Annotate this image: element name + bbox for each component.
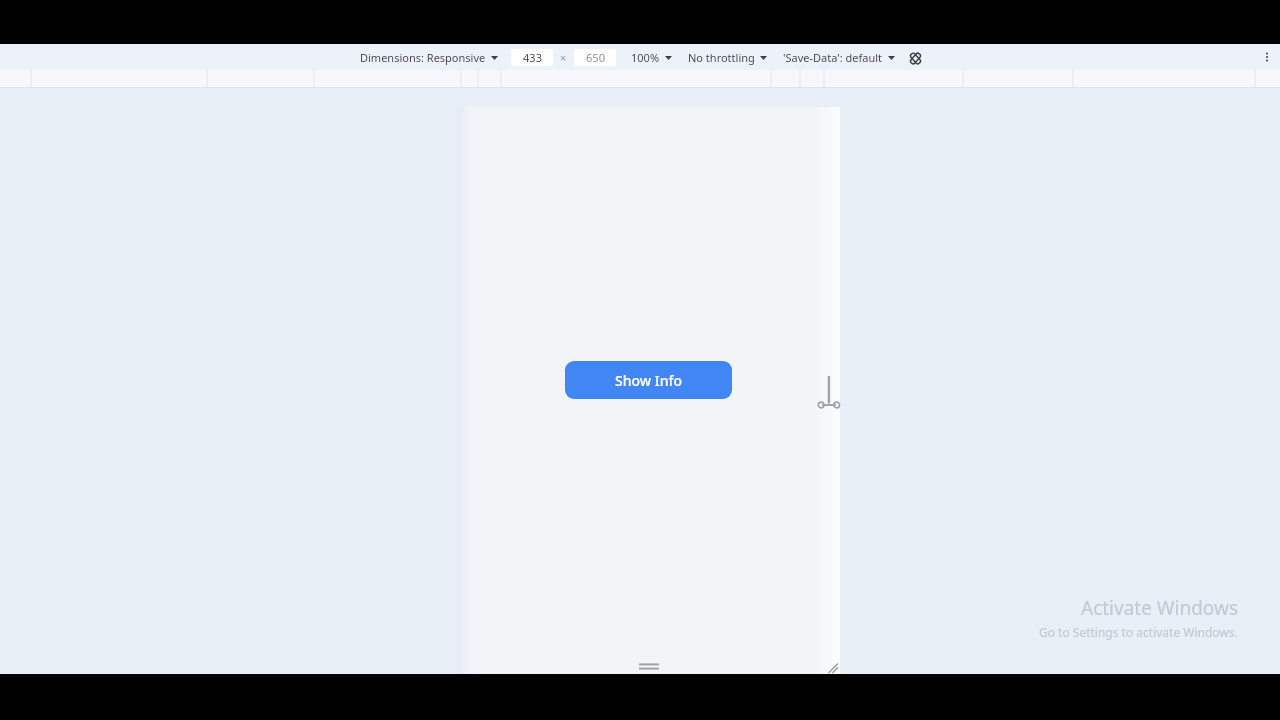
button[interactable]: Show Info <box>565 361 732 399</box>
button[interactable]: Resize <box>824 659 838 673</box>
staticText: Activate Windows <box>1081 595 1238 621</box>
button[interactable]: No throttling <box>685 48 770 67</box>
staticText: 100% <box>631 50 660 65</box>
button[interactable]: More options <box>1257 47 1277 67</box>
staticText: × <box>560 50 567 65</box>
staticText: Show Info <box>615 371 682 390</box>
button[interactable]: Rotate <box>906 49 924 67</box>
button[interactable]: 650 <box>574 49 616 66</box>
staticText: 'Save-Data': default <box>783 50 883 65</box>
button[interactable]: Dimensions: Responsive <box>357 48 501 67</box>
staticText: Dimensions: Responsive <box>360 50 486 65</box>
button[interactable]: Resize width <box>818 372 844 422</box>
staticText: Go to Settings to activate Windows. <box>1039 624 1238 640</box>
staticText: No throttling <box>688 50 755 65</box>
button[interactable]: 'Save-Data': default <box>780 48 898 67</box>
button[interactable]: 100% <box>628 48 675 67</box>
staticText: 433 <box>523 50 542 65</box>
staticText: 650 <box>586 50 605 65</box>
button[interactable]: 433 <box>511 49 553 66</box>
button[interactable]: Resize height <box>636 660 662 672</box>
